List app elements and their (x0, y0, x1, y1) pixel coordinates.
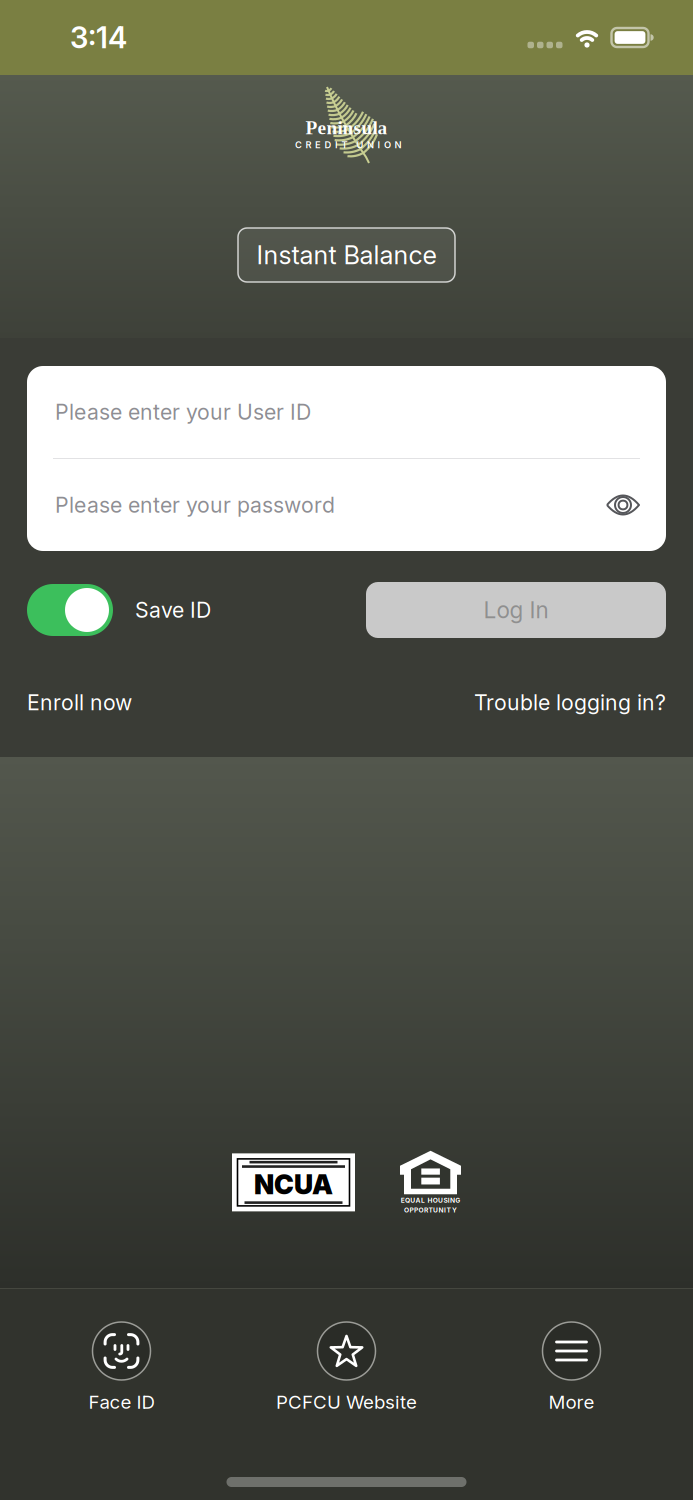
staticText: Please enter your User ID (55, 399, 311, 425)
staticText: 3:14 (70, 20, 127, 55)
button[interactable]: Enroll now (27, 690, 132, 715)
staticText: OPPORTUNITY (404, 1206, 457, 1214)
button[interactable]: More (459, 1322, 684, 1413)
button[interactable]: Trouble logging in? (474, 690, 666, 715)
staticText: Save ID (135, 597, 211, 623)
button[interactable]: PCFCU Website (234, 1322, 459, 1413)
staticText: Peninsula (305, 117, 387, 138)
staticText: Trouble logging in? (474, 690, 666, 715)
staticText: NCUA (254, 1169, 333, 1200)
staticText: PCFCU Website (276, 1391, 417, 1413)
button[interactable]: Show password (606, 493, 640, 517)
button[interactable]: Log In (366, 582, 666, 638)
staticText: Please enter your password (55, 492, 335, 518)
button[interactable]: Instant Balance (238, 228, 455, 282)
staticText: More (548, 1391, 594, 1413)
staticText: Instant Balance (256, 240, 436, 270)
button[interactable]: Face ID (9, 1322, 234, 1413)
staticText: EQUAL HOUSING (401, 1196, 460, 1204)
staticText: Enroll now (27, 690, 132, 715)
staticText: CREDIT UNION (295, 139, 401, 150)
staticText: Log In (483, 597, 548, 623)
staticText: Face ID (88, 1391, 154, 1413)
button[interactable]: Save ID (27, 584, 113, 636)
